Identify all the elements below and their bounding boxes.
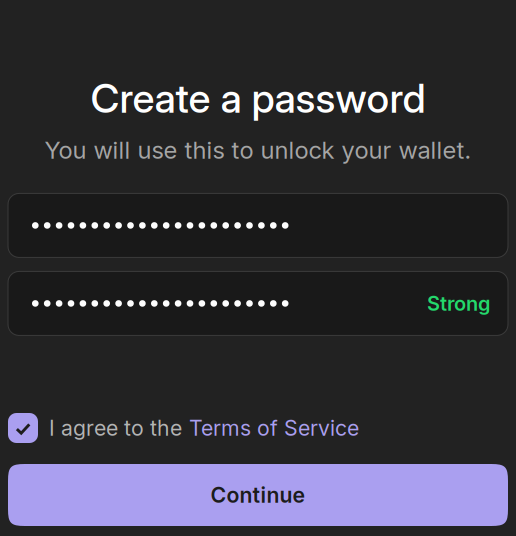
- button[interactable]: [8, 193, 508, 257]
- staticText: Strong: [427, 291, 490, 315]
- staticText: Create a password: [90, 74, 425, 122]
- button[interactable]: Strong: [8, 271, 508, 335]
- button[interactable]: I agree to the Terms of Service: [8, 413, 38, 443]
- staticText: I agree to the: [49, 415, 182, 441]
- button[interactable]: Continue: [8, 464, 508, 526]
- staticText: You will use this to unlock your wallet.: [44, 135, 471, 164]
- button[interactable]: Terms of Service: [182, 415, 359, 441]
- staticText: Terms of Service: [189, 415, 359, 441]
- staticText: Continue: [210, 482, 305, 508]
